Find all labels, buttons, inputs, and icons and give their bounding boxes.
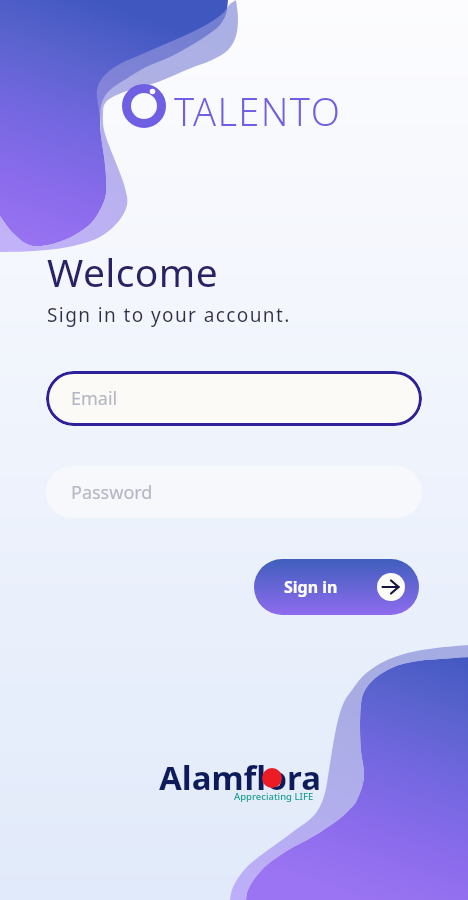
staticText: Sign in — [284, 576, 338, 598]
staticText: TALENTO — [174, 85, 342, 137]
staticText: Appreciating LIFE — [234, 790, 314, 803]
staticText: Email — [71, 386, 118, 411]
button[interactable]: Password — [46, 466, 422, 518]
staticText: Sign in to your account. — [47, 302, 291, 328]
button[interactable]: Sign in — [254, 559, 419, 615]
staticText: Alamflora — [159, 755, 321, 800]
staticText: Welcome — [47, 245, 219, 298]
button[interactable]: Email — [46, 371, 422, 426]
staticText: Password — [71, 480, 153, 505]
